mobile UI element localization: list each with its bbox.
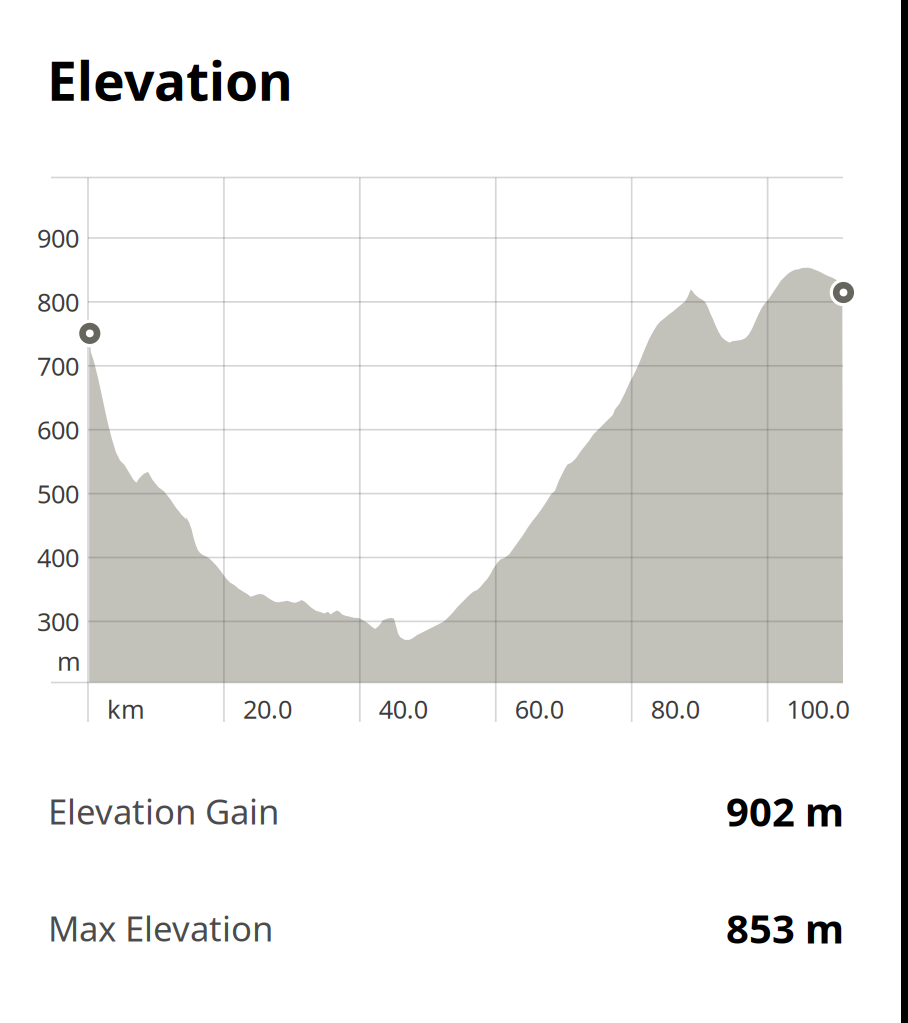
staticText: 400 [37,541,79,574]
staticText: 60.0 [515,692,564,726]
staticText: Elevation [47,45,293,115]
staticText: km [107,692,145,726]
staticText: 300 [37,605,79,638]
staticText: 600 [37,413,79,446]
button[interactable]: Elevation Gain [0,756,908,866]
staticText: Max Elevation [48,905,273,951]
staticText: 500 [37,477,79,510]
staticText: 902 m [726,784,844,837]
staticText: 900 [37,221,79,255]
staticText: 800 [37,285,79,319]
staticText: 80.0 [651,692,700,726]
staticText: 853 m [726,901,844,954]
staticText: 700 [37,349,79,383]
staticText: 20.0 [243,692,292,726]
staticText: m [57,644,81,678]
staticText: 100.0 [787,692,850,726]
staticText: Elevation Gain [48,788,279,834]
staticText: 40.0 [379,692,428,726]
button[interactable]: Max Elevation [0,873,908,983]
